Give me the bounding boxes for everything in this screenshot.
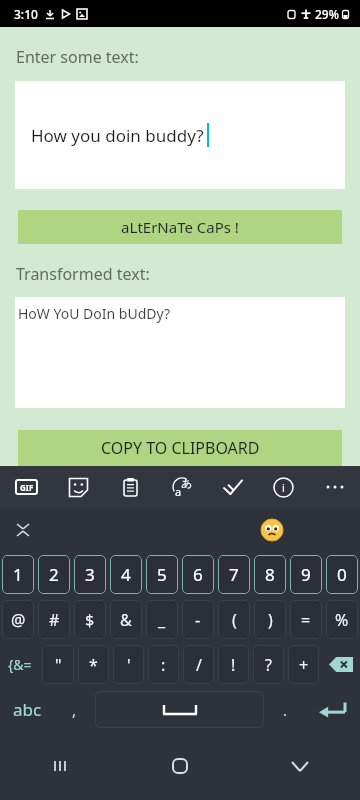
staticText: Transformed text: — [16, 263, 150, 285]
staticText: ? — [265, 654, 272, 676]
staticText: + — [299, 654, 309, 676]
button[interactable]: aLtErNaTe CaPs ! — [18, 210, 342, 244]
staticText: @ — [11, 609, 26, 631]
staticText: 1 — [13, 563, 23, 586]
staticText: COPY TO CLIPBOARD — [101, 437, 260, 459]
button[interactable]: check — [207, 466, 258, 508]
staticText: : — [161, 654, 166, 676]
button[interactable]: , — [55, 687, 93, 732]
button[interactable]: 4 — [110, 555, 142, 594]
staticText: i — [282, 480, 285, 495]
button[interactable]: Home — [120, 732, 240, 800]
staticText: * — [89, 654, 98, 676]
staticText: 3:10 — [14, 6, 38, 22]
button[interactable]: sticker — [52, 466, 104, 508]
staticText: GIF — [20, 482, 34, 493]
staticText: " — [55, 654, 62, 676]
button[interactable]: # — [38, 600, 70, 639]
staticText: 4 — [121, 563, 131, 586]
staticText: HoW YoU DoIn bUdDy? — [18, 304, 170, 323]
button[interactable]: {&= — [0, 642, 40, 687]
button[interactable]: How you doin buddy? — [15, 81, 345, 189]
staticText: 3 — [85, 563, 95, 586]
staticText: ! — [231, 654, 236, 676]
button[interactable]: Emoji suggestion — [255, 513, 289, 547]
button[interactable]: more — [309, 466, 360, 508]
button[interactable]: . — [266, 687, 304, 732]
staticText: abc — [13, 698, 42, 721]
button[interactable]: Backspace — [321, 642, 360, 687]
button[interactable]: ? — [253, 645, 284, 684]
staticText: a — [175, 484, 182, 499]
button[interactable]: + — [288, 645, 319, 684]
staticText: ) — [268, 609, 273, 631]
staticText: Enter some text: — [16, 46, 139, 68]
staticText: How you doin buddy? — [31, 124, 204, 147]
staticText: = — [301, 609, 311, 631]
staticText: % — [335, 609, 349, 631]
button[interactable]: _ — [146, 600, 178, 639]
staticText: / — [196, 654, 202, 676]
button[interactable]: COPY TO CLIPBOARD — [18, 430, 342, 466]
button[interactable]: Recent apps — [0, 732, 120, 800]
button[interactable]: Enter — [304, 687, 360, 732]
button[interactable]: HoW YoU DoIn bUdDy? — [15, 297, 345, 408]
staticText: 29% — [315, 6, 339, 22]
button[interactable]: ! — [218, 645, 249, 684]
button[interactable]: abc — [0, 687, 55, 732]
staticText: {&= — [8, 655, 32, 674]
button[interactable]: * — [78, 645, 109, 684]
button[interactable]: GIF — [0, 466, 52, 508]
button[interactable]: = — [290, 600, 322, 639]
button[interactable]: Expand toolbar — [8, 515, 38, 545]
button[interactable]: 0 — [326, 555, 358, 594]
staticText: ( — [232, 609, 237, 631]
staticText: $ — [85, 609, 95, 631]
staticText: , — [72, 700, 77, 720]
button[interactable]: % — [326, 600, 358, 639]
staticText: 8 — [265, 563, 275, 586]
button[interactable]: @ — [2, 600, 34, 639]
button[interactable]: $ — [74, 600, 106, 639]
staticText: . — [283, 700, 288, 720]
button[interactable]: 8 — [254, 555, 286, 594]
button[interactable]: 7 — [218, 555, 250, 594]
button[interactable]: Space — [95, 691, 264, 728]
staticText: ' — [127, 654, 131, 676]
staticText: # — [49, 609, 60, 631]
button[interactable]: " — [42, 645, 74, 684]
button[interactable]: ) — [254, 600, 286, 639]
button[interactable]: ( — [218, 600, 250, 639]
button[interactable]: info — [258, 466, 309, 508]
button[interactable]: 2 — [38, 555, 70, 594]
staticText: aLtErNaTe CaPs ! — [121, 217, 239, 237]
staticText: あ — [181, 476, 193, 490]
staticText: & — [120, 609, 132, 631]
staticText: 0 — [337, 563, 347, 586]
button[interactable]: 5 — [146, 555, 178, 594]
staticText: 2 — [49, 563, 59, 586]
staticText: _ — [158, 609, 166, 631]
button[interactable]: translate — [156, 466, 207, 508]
button[interactable]: & — [110, 600, 142, 639]
button[interactable]: - — [182, 600, 214, 639]
button[interactable]: Hide keyboard — [240, 732, 360, 800]
button[interactable]: / — [183, 645, 214, 684]
staticText: - — [195, 609, 201, 631]
button[interactable]: 9 — [290, 555, 322, 594]
button[interactable]: : — [148, 645, 179, 684]
staticText: 7 — [229, 563, 239, 586]
staticText: 6 — [193, 563, 203, 586]
staticText: 9 — [301, 563, 311, 586]
button[interactable]: clipboard — [104, 466, 156, 508]
button[interactable]: ' — [113, 645, 144, 684]
button[interactable]: 6 — [182, 555, 214, 594]
button[interactable]: 1 — [2, 555, 34, 594]
button[interactable]: 3 — [74, 555, 106, 594]
staticText: 5 — [157, 563, 167, 586]
